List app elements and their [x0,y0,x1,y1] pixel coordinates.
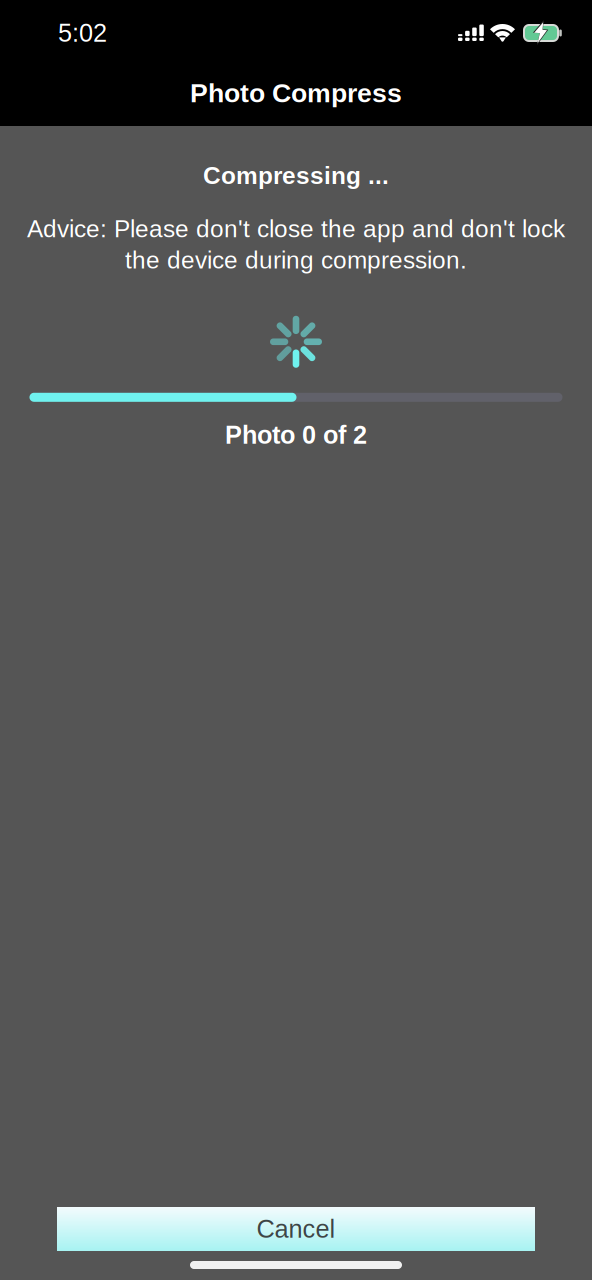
button[interactable]: Cancel [57,1207,535,1251]
staticText: 5:02 [58,19,107,47]
staticText: Cancel [256,1215,335,1243]
staticText: the device during compression. [125,246,467,274]
staticText: Photo Compress [190,78,402,108]
staticText: Advice: Please don't close the app and d… [27,215,565,243]
staticText: Photo 0 of 2 [225,421,367,449]
staticText: Compressing ... [203,162,389,189]
